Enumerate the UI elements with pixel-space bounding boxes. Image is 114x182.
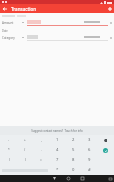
staticText: , xyxy=(41,138,42,142)
button[interactable]: Recents xyxy=(79,175,86,182)
staticText: Suggest contact names? Touch for info xyxy=(31,129,83,133)
button[interactable]: 6 xyxy=(81,145,97,155)
button[interactable]: + xyxy=(17,135,33,145)
button[interactable]: * xyxy=(49,165,65,175)
button[interactable]: 2 xyxy=(65,135,81,145)
staticText: Date xyxy=(2,29,8,33)
staticText: ) xyxy=(25,158,26,162)
staticText: = xyxy=(40,158,42,162)
staticText: / xyxy=(24,148,26,152)
staticText: 5 xyxy=(72,147,75,153)
staticText: 7 xyxy=(56,157,59,163)
staticText: 8 xyxy=(72,157,75,163)
button[interactable]: 8 xyxy=(65,155,81,165)
staticText: # xyxy=(88,167,91,173)
staticText: . xyxy=(41,148,42,152)
button[interactable]: Hide keyboard xyxy=(51,175,58,182)
button[interactable]: Category xyxy=(0,33,114,42)
staticText: Transaction xyxy=(11,6,36,12)
button[interactable]: Delete xyxy=(102,137,109,144)
button[interactable]: Suggest contact names? Touch for info xyxy=(0,126,114,135)
staticText: + xyxy=(24,138,26,142)
button[interactable]: Home xyxy=(65,175,72,182)
button[interactable]: * xyxy=(1,145,17,155)
staticText: 1 xyxy=(56,137,59,143)
button[interactable]: / xyxy=(17,145,33,155)
button[interactable]: 5 xyxy=(65,145,81,155)
staticText: 6 xyxy=(88,147,91,153)
staticText: * xyxy=(56,167,59,173)
button[interactable]: 0 xyxy=(65,165,81,175)
button[interactable]: 3 xyxy=(81,135,97,145)
button[interactable]: ) xyxy=(17,155,33,165)
staticText: 4 xyxy=(56,147,59,153)
button[interactable]: Enter xyxy=(103,148,108,153)
button[interactable]: Amount xyxy=(0,18,114,27)
button[interactable]: ( xyxy=(1,155,17,165)
staticText: 9 xyxy=(88,157,91,163)
staticText: Amount xyxy=(2,21,22,25)
button[interactable]: = xyxy=(33,155,49,165)
button[interactable]: # xyxy=(81,165,97,175)
button[interactable]: 7 xyxy=(49,155,65,165)
button[interactable]: 9 xyxy=(81,155,97,165)
button[interactable]: Save xyxy=(105,4,114,13)
staticText: - xyxy=(8,138,10,142)
staticText: * xyxy=(8,148,10,152)
button[interactable]: Switch keyboard xyxy=(107,175,114,182)
staticText: 3 xyxy=(88,137,91,143)
staticText: 0 xyxy=(72,167,75,173)
button[interactable]: 4 xyxy=(49,145,65,155)
staticText: ( xyxy=(9,158,10,162)
staticText: 2 xyxy=(72,137,75,143)
button[interactable]: Back xyxy=(0,4,9,13)
staticText: Category xyxy=(2,36,22,40)
button[interactable]: 1 xyxy=(49,135,65,145)
